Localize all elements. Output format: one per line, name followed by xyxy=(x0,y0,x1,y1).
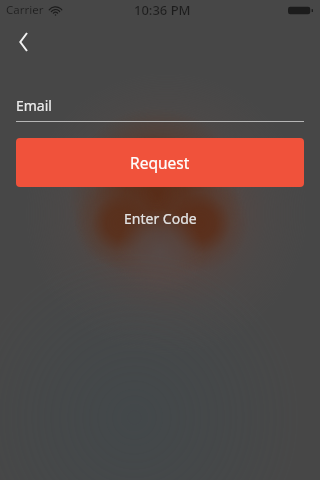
button[interactable]: Request xyxy=(16,138,304,187)
staticText: Enter Code xyxy=(124,209,197,228)
button[interactable]: Back xyxy=(7,26,39,58)
staticText: Carrier xyxy=(6,2,44,18)
staticText: 10:36 PM xyxy=(134,1,191,19)
button[interactable]: Enter Code xyxy=(108,201,213,236)
staticText: Request xyxy=(130,152,190,173)
staticText: Email xyxy=(16,96,52,115)
button[interactable]: Email xyxy=(16,96,52,115)
